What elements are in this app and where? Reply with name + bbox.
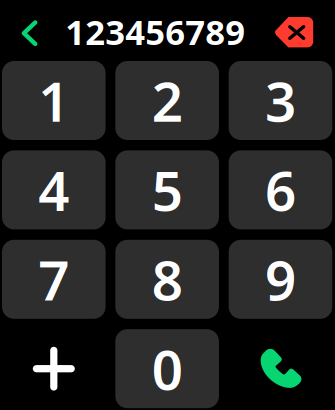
button[interactable]: 6 (229, 150, 332, 229)
staticText: 1 (38, 64, 69, 137)
button[interactable]: 2 (115, 61, 219, 140)
button[interactable]: Back (8, 11, 52, 55)
button[interactable]: 9 (229, 240, 332, 319)
staticText: 7 (38, 243, 69, 316)
staticText: 123456789 (65, 9, 245, 55)
staticText: 2 (152, 64, 183, 137)
button[interactable]: Plus (2, 329, 106, 408)
button[interactable]: Call (229, 329, 332, 408)
button[interactable]: 0 (115, 329, 219, 408)
staticText: 8 (152, 243, 183, 316)
button[interactable]: 4 (2, 150, 106, 229)
staticText: 3 (265, 64, 296, 137)
staticText: 9 (265, 243, 296, 316)
staticText: 0 (152, 332, 183, 405)
button[interactable]: 5 (115, 150, 219, 229)
staticText: 6 (265, 154, 296, 226)
staticText: 4 (38, 154, 69, 226)
button[interactable]: 7 (2, 240, 106, 319)
button[interactable]: 1 (2, 61, 106, 140)
button[interactable]: 3 (229, 61, 332, 140)
button[interactable]: 8 (115, 240, 219, 319)
button[interactable]: Delete (271, 10, 317, 54)
staticText: 5 (152, 154, 183, 226)
